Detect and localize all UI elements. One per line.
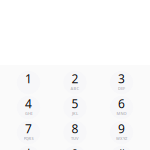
button[interactable]: 1 — [5, 70, 52, 95]
staticText: 9 — [118, 120, 125, 136]
staticText: PQRS — [23, 136, 33, 141]
staticText: 8 — [71, 120, 78, 136]
staticText: MNO — [116, 111, 126, 116]
button[interactable]: 0 — [52, 145, 98, 150]
staticText: ABC — [70, 86, 79, 91]
button[interactable]: # — [98, 145, 145, 150]
staticText: # — [117, 145, 125, 150]
button[interactable]: 8 — [52, 120, 98, 145]
button[interactable]: 7 — [5, 120, 52, 145]
staticText: 7 — [25, 120, 32, 136]
button[interactable]: 2 — [52, 70, 98, 95]
staticText: 4 — [25, 95, 32, 111]
staticText: 2 — [71, 70, 78, 86]
button[interactable]: 4 — [5, 95, 52, 120]
staticText: 1 — [25, 70, 32, 86]
button[interactable]: ∗ — [5, 145, 52, 150]
staticText: WXYZ — [116, 136, 127, 141]
button[interactable]: 9 — [98, 120, 145, 145]
staticText: TUV — [71, 136, 79, 141]
staticText: 0 — [71, 145, 78, 150]
staticText: 3 — [118, 70, 125, 86]
staticText: DEF — [118, 86, 125, 91]
staticText: ∗ — [23, 145, 33, 150]
button[interactable]: 6 — [98, 95, 145, 120]
staticText: 5 — [71, 95, 78, 111]
staticText: JKL — [72, 111, 78, 116]
button[interactable]: 5 — [52, 95, 98, 120]
button[interactable]: 3 — [98, 70, 145, 95]
staticText: 6 — [118, 95, 125, 111]
staticText: GHI — [25, 111, 32, 116]
